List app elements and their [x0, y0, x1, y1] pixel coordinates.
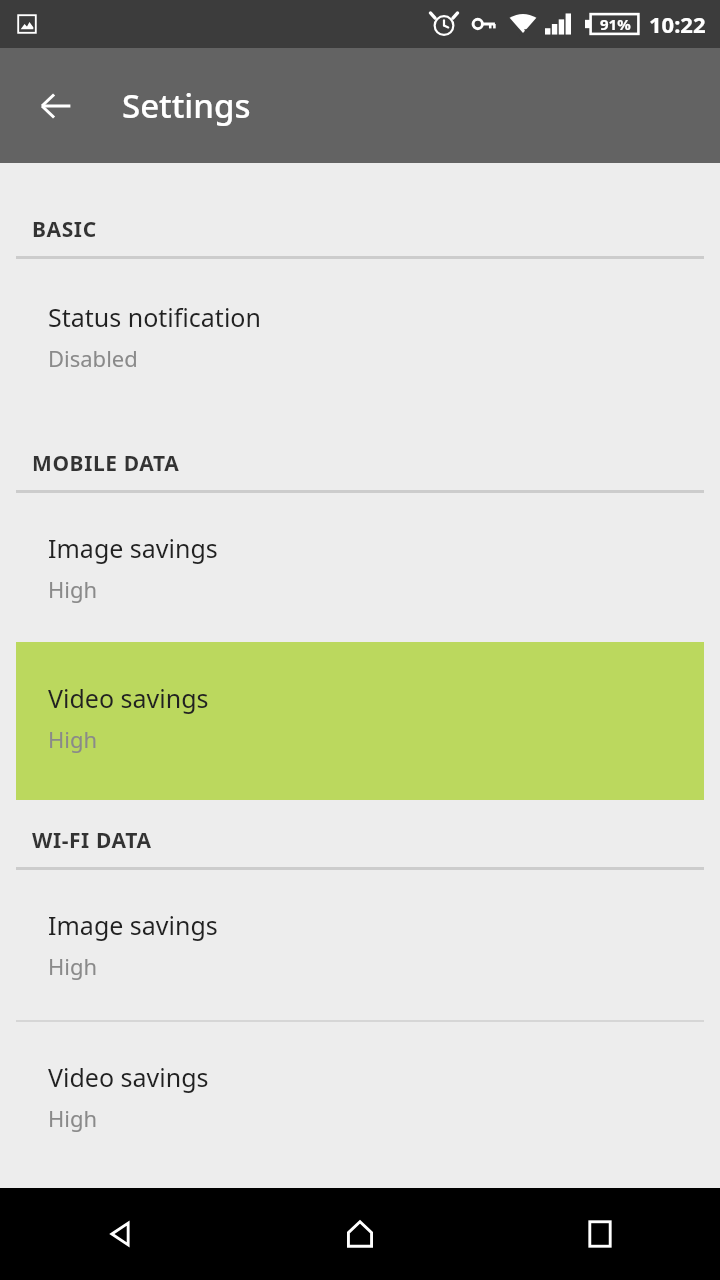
- button[interactable]: Status notification: [0, 259, 720, 419]
- staticText: MOBILE DATA: [32, 449, 180, 478]
- button[interactable]: Back: [20, 70, 92, 142]
- staticText: High: [48, 951, 98, 981]
- staticText: Settings: [122, 83, 251, 128]
- staticText: High: [48, 724, 98, 754]
- staticText: Disabled: [48, 343, 138, 373]
- staticText: Video savings: [48, 681, 209, 715]
- staticText: High: [48, 1103, 98, 1133]
- button[interactable]: Recent apps: [480, 1188, 720, 1280]
- staticText: Image savings: [48, 908, 218, 942]
- button[interactable]: Home: [240, 1188, 480, 1280]
- staticText: BASIC: [32, 215, 97, 244]
- staticText: WI-FI DATA: [32, 826, 152, 855]
- button[interactable]: Back: [0, 1188, 240, 1280]
- staticText: 10:22: [649, 9, 706, 39]
- button[interactable]: Video savings: [16, 642, 704, 800]
- button[interactable]: Video savings: [0, 1022, 720, 1171]
- button[interactable]: Image savings: [0, 493, 720, 642]
- button[interactable]: Image savings: [0, 870, 720, 1020]
- staticText: Status notification: [48, 300, 261, 334]
- staticText: 91%: [600, 14, 631, 34]
- staticText: Image savings: [48, 531, 218, 565]
- staticText: Video savings: [48, 1060, 209, 1094]
- staticText: High: [48, 574, 98, 604]
